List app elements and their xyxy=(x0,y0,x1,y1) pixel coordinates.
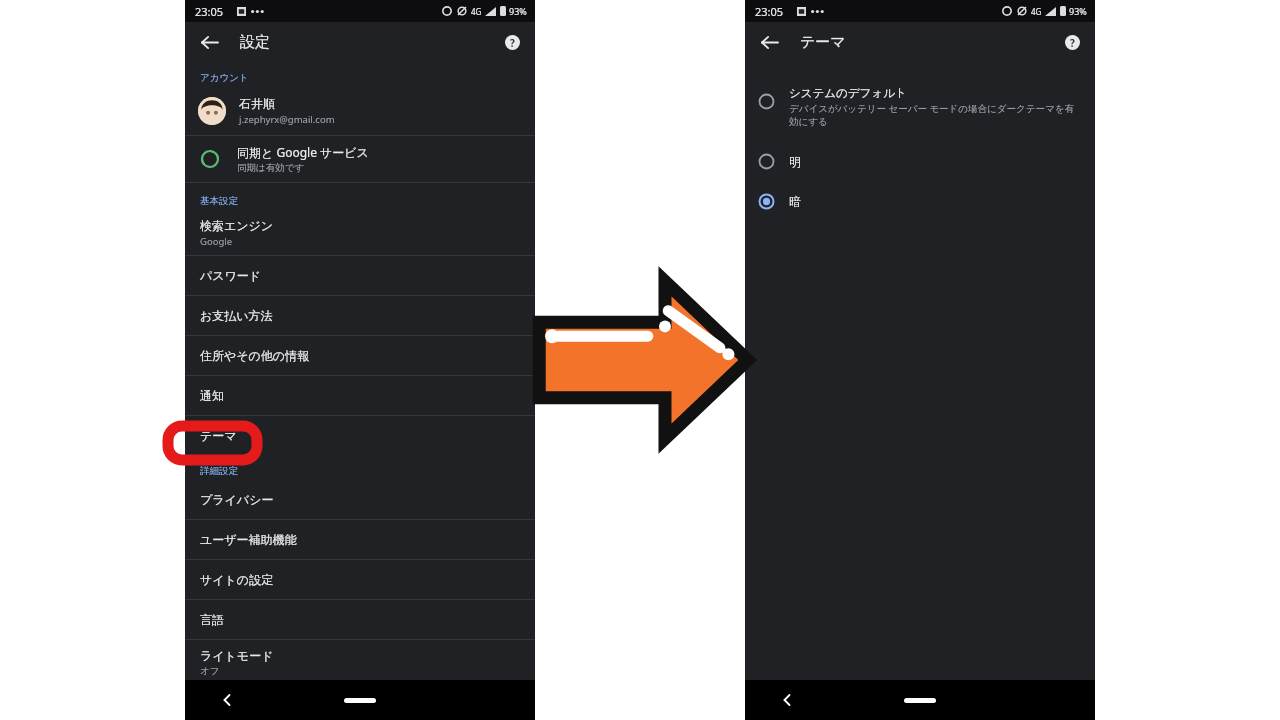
button[interactable]: Back xyxy=(753,26,785,58)
staticText: ユーザー補助機能 xyxy=(200,532,297,547)
staticText: 4G xyxy=(471,6,482,17)
staticText: 言語 xyxy=(200,612,224,627)
staticText: 93% xyxy=(509,5,527,17)
staticText: 設定 xyxy=(240,33,270,52)
staticText: 明 xyxy=(789,154,801,169)
button[interactable]: 住所やその他の情報 xyxy=(185,336,535,375)
staticText: テーマ xyxy=(200,428,237,443)
button[interactable]: Home xyxy=(344,698,376,703)
button[interactable]: ライトモード xyxy=(185,640,535,685)
staticText: デバイスがバッテリー セーバー モードの場合にダークテーマを有効にする xyxy=(789,102,1081,128)
button[interactable]: Back xyxy=(213,686,241,714)
button[interactable]: 石井順 xyxy=(185,87,535,135)
button[interactable]: 明 xyxy=(745,144,1095,178)
staticText: オフ xyxy=(200,665,220,677)
button[interactable]: 同期と Google サービス xyxy=(185,136,535,182)
staticText: 住所やその他の情報 xyxy=(200,348,310,363)
staticText: ? xyxy=(510,36,515,50)
staticText: Google xyxy=(200,235,233,248)
staticText: 基本設定 xyxy=(200,195,238,207)
button[interactable]: プライバシー xyxy=(185,480,535,519)
staticText: j.zephyrx@gmail.com xyxy=(239,113,335,126)
button[interactable]: テーマ xyxy=(185,416,535,455)
staticText: サイトの設定 xyxy=(200,572,274,587)
button[interactable]: パスワード xyxy=(185,256,535,295)
staticText: 詳細設定 xyxy=(200,465,238,477)
button[interactable]: ユーザー補助機能 xyxy=(185,520,535,559)
staticText: ? xyxy=(1070,36,1075,50)
staticText: 暗 xyxy=(789,194,801,209)
staticText: パスワード xyxy=(200,268,262,283)
button[interactable]: Back xyxy=(193,26,225,58)
staticText: テーマ xyxy=(800,33,846,52)
button[interactable]: 言語 xyxy=(185,600,535,639)
staticText: 検索エンジン xyxy=(200,218,274,233)
staticText: システムのデフォルト xyxy=(789,86,907,100)
button[interactable]: サイトの設定 xyxy=(185,560,535,599)
button[interactable]: システムのデフォルト xyxy=(745,80,1095,134)
button[interactable]: お支払い方法 xyxy=(185,296,535,335)
staticText: 4G xyxy=(1031,6,1042,17)
button[interactable]: 通知 xyxy=(185,376,535,415)
staticText: アカウント xyxy=(200,72,249,84)
staticText: 23:05 xyxy=(755,4,784,19)
staticText: プライバシー xyxy=(200,492,274,507)
button[interactable]: Help xyxy=(1058,28,1086,56)
staticText: 同期と Google サービス xyxy=(237,144,369,160)
button[interactable]: Back xyxy=(773,686,801,714)
staticText: ライトモード xyxy=(200,648,274,663)
staticText: 93% xyxy=(1069,5,1087,17)
button[interactable]: Help xyxy=(498,28,526,56)
staticText: 同期は有効です xyxy=(237,162,305,174)
staticText: 23:05 xyxy=(195,4,224,19)
button[interactable]: 検索エンジン xyxy=(185,210,535,255)
staticText: お支払い方法 xyxy=(200,308,273,323)
staticText: 石井順 xyxy=(239,96,275,111)
staticText: 通知 xyxy=(200,388,224,403)
button[interactable]: Home xyxy=(904,698,936,703)
button[interactable]: 暗 xyxy=(745,184,1095,218)
